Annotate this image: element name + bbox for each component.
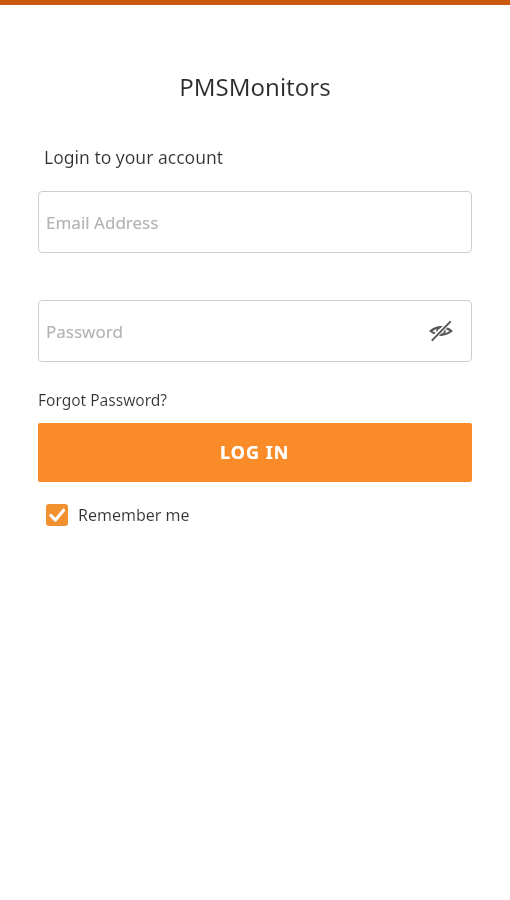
staticText: Remember me	[78, 504, 190, 526]
staticText: Email Address	[46, 211, 159, 234]
button[interactable]: Remember me	[46, 504, 190, 526]
button[interactable]: Email Address	[38, 191, 472, 253]
staticText: PMSMonitors	[0, 70, 510, 103]
button[interactable]: Forgot Password?	[38, 389, 168, 410]
button[interactable]: Show password	[428, 318, 454, 344]
staticText: LOG IN	[220, 440, 290, 465]
staticText: Password	[46, 320, 123, 343]
staticText: Forgot Password?	[38, 389, 168, 410]
button[interactable]: Password	[38, 300, 472, 362]
button[interactable]: LOG IN	[38, 423, 472, 482]
staticText: Login to your account	[44, 145, 224, 169]
